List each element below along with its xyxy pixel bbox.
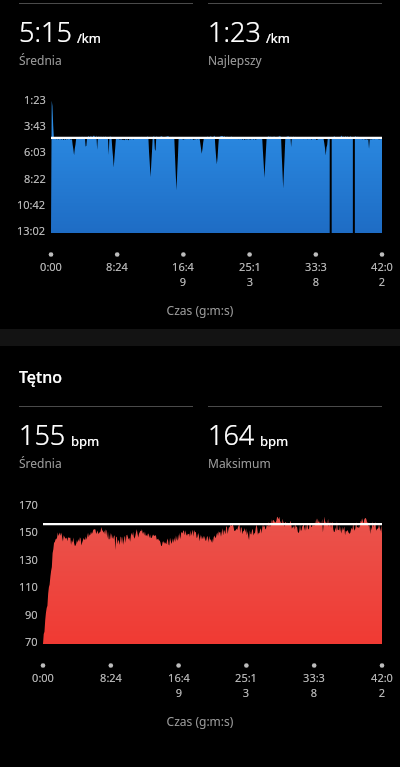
staticText: 150 — [19, 524, 38, 539]
staticText: 5:15 — [19, 13, 72, 50]
staticText: 16:49 — [165, 670, 193, 700]
staticText: Tętno — [19, 366, 62, 388]
staticText: 1:23 — [24, 92, 46, 107]
staticText: 130 — [19, 552, 38, 567]
button[interactable]: 1:23 — [208, 3, 382, 68]
staticText: 1:23 — [208, 13, 261, 50]
staticText: 6:03 — [24, 144, 46, 159]
staticText: 33:38 — [302, 259, 330, 289]
staticText: 13:02 — [17, 223, 46, 238]
staticText: 164 — [208, 416, 255, 453]
staticText: 110 — [19, 579, 38, 594]
staticText: /km — [266, 29, 290, 47]
staticText: 25:13 — [232, 670, 260, 700]
button[interactable]: 5:15 — [19, 3, 193, 68]
staticText: 25:13 — [236, 259, 264, 289]
staticText: Maksimum — [208, 455, 271, 471]
staticText: 0:00 — [29, 670, 57, 685]
staticText: 16:49 — [169, 259, 197, 289]
staticText: 8:24 — [97, 670, 125, 685]
staticText: bpm — [71, 432, 100, 450]
staticText: 70 — [25, 634, 38, 649]
staticText: 33:38 — [300, 670, 328, 700]
staticText: 42:02 — [368, 259, 396, 289]
staticText: 8:24 — [103, 259, 131, 274]
button[interactable]: 164 — [208, 406, 382, 471]
staticText: Średnia — [19, 52, 62, 68]
staticText: Średnia — [19, 455, 62, 471]
staticText: 170 — [19, 497, 38, 512]
staticText: 0:00 — [37, 259, 65, 274]
staticText: 10:42 — [17, 197, 46, 212]
staticText: 8:22 — [24, 171, 46, 186]
staticText: Najlepszy — [208, 52, 262, 68]
button[interactable]: 155 — [19, 406, 193, 471]
staticText: Czas (g:m:s) — [0, 713, 400, 729]
staticText: bpm — [260, 432, 289, 450]
staticText: 3:43 — [24, 118, 46, 133]
staticText: Czas (g:m:s) — [0, 302, 400, 318]
staticText: /km — [77, 29, 101, 47]
staticText: 90 — [25, 607, 38, 622]
staticText: 42:02 — [368, 670, 396, 700]
staticText: 155 — [19, 416, 66, 453]
